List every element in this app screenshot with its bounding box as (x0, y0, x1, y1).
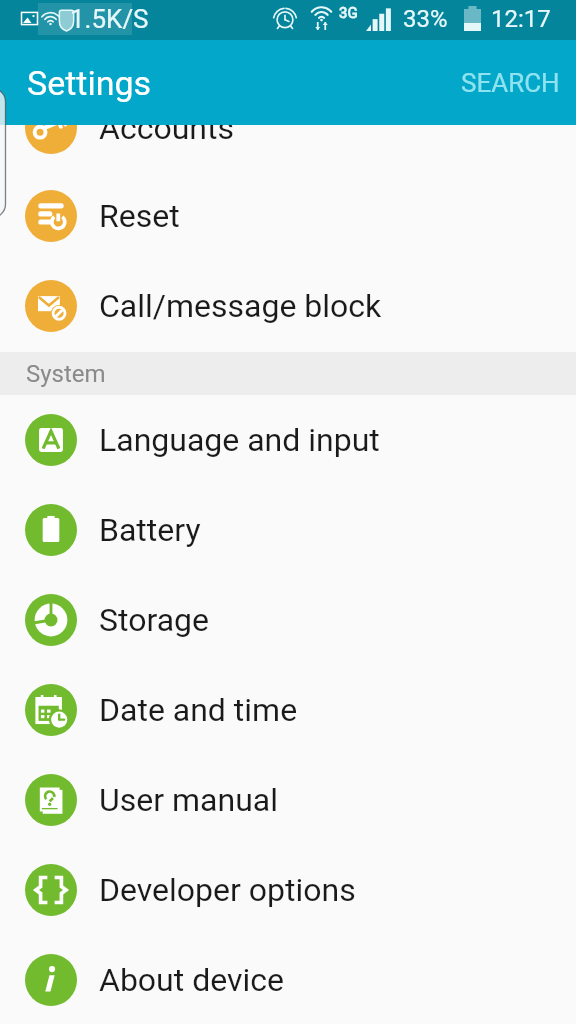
staticText: Call/message block (99, 287, 382, 325)
button[interactable]: About device (0, 935, 576, 1024)
button[interactable]: Reset (0, 171, 576, 261)
staticText: Accounts (99, 125, 234, 147)
button[interactable]: Call/message block (0, 261, 576, 351)
staticText: 3G (339, 4, 358, 22)
staticText: Language and input (99, 421, 380, 459)
staticText: Storage (99, 601, 209, 639)
button[interactable]: Storage (0, 575, 576, 665)
staticText: Developer options (99, 871, 356, 909)
staticText: User manual (99, 781, 278, 819)
staticText: Date and time (99, 691, 298, 729)
staticText: SEARCH (461, 68, 560, 98)
staticText: About device (99, 961, 284, 999)
button[interactable]: SEARCH (439, 56, 576, 110)
button[interactable]: Developer options (0, 845, 576, 935)
button[interactable]: User manual (0, 755, 576, 845)
staticText: 1.5K/S (70, 4, 149, 34)
staticText: 33% (403, 5, 448, 33)
button[interactable]: Date and time (0, 665, 576, 755)
button[interactable]: Language and input (0, 395, 576, 485)
staticText: Settings (27, 63, 152, 103)
button[interactable]: Accounts (0, 125, 576, 173)
staticText: System (26, 360, 106, 388)
staticText: Battery (99, 511, 201, 549)
staticText: 12:17 (491, 5, 551, 33)
staticText: Reset (99, 197, 180, 235)
button[interactable]: Battery (0, 485, 576, 575)
